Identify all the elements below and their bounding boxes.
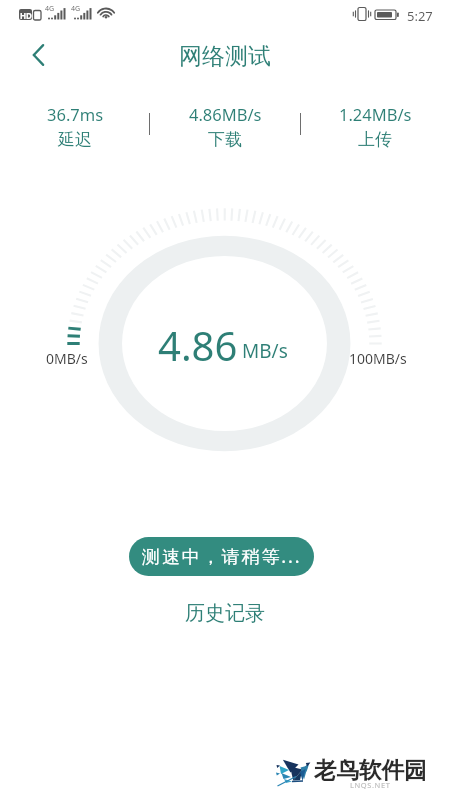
- staticText: MB/s: [242, 338, 288, 364]
- staticText: HD: [20, 10, 32, 21]
- staticText: 下载: [208, 129, 242, 150]
- staticText: 历史记录: [185, 601, 265, 626]
- staticText: 测速中，请稍等...: [142, 544, 302, 569]
- staticText: 36.7ms: [47, 103, 104, 125]
- button[interactable]: Back: [18, 34, 60, 76]
- staticText: LNQS.NET: [350, 780, 391, 790]
- staticText: 上传: [358, 129, 392, 150]
- staticText: 0MB/s: [46, 349, 88, 368]
- staticText: 网络测试: [179, 42, 271, 71]
- staticText: 4G: [45, 4, 55, 14]
- staticText: 5:27: [407, 7, 433, 25]
- button[interactable]: 历史记录: [165, 597, 285, 629]
- staticText: 4G: [71, 4, 81, 14]
- staticText: 老鸟软件园: [314, 756, 427, 784]
- staticText: 1.24MB/s: [339, 103, 412, 125]
- button[interactable]: 测速中，请稍等...: [129, 537, 314, 576]
- staticText: 4.86: [158, 318, 238, 372]
- staticText: 延迟: [58, 129, 92, 150]
- staticText: 4.86MB/s: [189, 103, 262, 125]
- staticText: 100MB/s: [349, 349, 407, 368]
